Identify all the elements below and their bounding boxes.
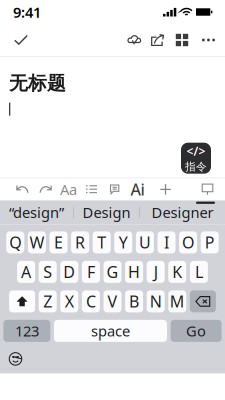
staticText: N xyxy=(150,291,162,312)
staticText: I xyxy=(164,232,169,253)
button[interactable]: J xyxy=(147,261,165,283)
button[interactable]: Design xyxy=(74,200,139,224)
staticText: A xyxy=(21,261,31,282)
button[interactable]: W xyxy=(28,231,46,253)
button[interactable]: Q xyxy=(6,231,24,253)
button[interactable]: Go xyxy=(171,320,222,342)
button[interactable]: E xyxy=(49,231,67,253)
staticText: Q xyxy=(9,232,21,253)
staticText: 9:41 xyxy=(13,2,41,22)
button[interactable]: Emoji xyxy=(2,349,28,368)
button[interactable]: T xyxy=(93,231,111,253)
staticText: Design xyxy=(82,203,130,222)
button[interactable]: M xyxy=(168,290,186,312)
button[interactable]: More xyxy=(195,25,222,55)
button[interactable]: U xyxy=(136,231,154,253)
staticText: space xyxy=(91,321,130,341)
staticText: O xyxy=(182,232,194,253)
staticText: W xyxy=(29,232,44,253)
button[interactable]: 123 xyxy=(3,320,50,342)
staticText: G xyxy=(106,261,118,282)
button[interactable]: A xyxy=(17,261,35,283)
staticText: Z xyxy=(43,291,52,312)
staticText: L xyxy=(195,261,203,282)
staticText: Go xyxy=(186,321,206,341)
button[interactable]: F xyxy=(82,261,100,283)
staticText: U xyxy=(139,232,151,253)
button[interactable]: Share xyxy=(146,25,169,55)
staticText: M xyxy=(170,291,185,312)
staticText: 无标题 xyxy=(9,72,66,95)
button[interactable]: G xyxy=(103,261,121,283)
button[interactable]: L xyxy=(190,261,208,283)
button[interactable]: “design” xyxy=(0,200,73,224)
button[interactable]: I xyxy=(157,231,175,253)
staticText: C xyxy=(86,291,96,312)
staticText: V xyxy=(107,291,117,312)
button[interactable]: S xyxy=(39,261,57,283)
button[interactable]: Designer xyxy=(140,200,225,224)
staticText: 123 xyxy=(15,321,39,341)
button[interactable]: Hide keyboard xyxy=(196,179,219,200)
staticText: Y xyxy=(119,232,128,253)
staticText: D xyxy=(63,261,75,282)
button[interactable]: Comment xyxy=(103,179,126,200)
button[interactable]: Delete xyxy=(190,290,216,312)
button[interactable]: H xyxy=(125,261,143,283)
button[interactable]: B xyxy=(125,290,143,312)
button[interactable]: Insert xyxy=(154,179,177,200)
button[interactable]: Y xyxy=(114,231,132,253)
staticText: B xyxy=(129,291,139,312)
staticText: P xyxy=(205,232,215,253)
button[interactable]: K xyxy=(168,261,186,283)
button[interactable]: X xyxy=(60,290,78,312)
button[interactable]: Z xyxy=(39,290,57,312)
button[interactable]: D xyxy=(60,261,78,283)
button[interactable]: C xyxy=(82,290,100,312)
button[interactable]: AI xyxy=(126,179,149,200)
staticText: T xyxy=(97,232,106,253)
staticText: K xyxy=(172,261,182,282)
button[interactable]: V xyxy=(103,290,121,312)
staticText: </> xyxy=(186,143,205,159)
button[interactable]: O xyxy=(179,231,197,253)
staticText: S xyxy=(43,261,52,282)
button[interactable]: space xyxy=(54,320,167,342)
button[interactable]: Text style xyxy=(57,179,80,200)
staticText: 指令 xyxy=(185,160,207,173)
staticText: H xyxy=(128,261,140,282)
button[interactable]: Undo xyxy=(11,179,34,200)
button[interactable]: Sync xyxy=(123,25,146,55)
button[interactable]: R xyxy=(71,231,89,253)
staticText: Ai xyxy=(130,179,144,200)
button[interactable]: Grid view xyxy=(169,25,195,55)
button[interactable]: Redo xyxy=(34,179,57,200)
button[interactable]: P xyxy=(201,231,219,253)
button[interactable]: List xyxy=(80,179,103,200)
button[interactable]: Shift xyxy=(9,290,35,312)
staticText: Aa xyxy=(60,180,77,199)
staticText: X xyxy=(65,291,74,312)
button[interactable]: </> xyxy=(181,143,211,174)
staticText: Designer xyxy=(151,203,213,222)
staticText: R xyxy=(75,232,85,253)
staticText: “design” xyxy=(9,203,64,222)
staticText: F xyxy=(87,261,95,282)
button[interactable]: Done xyxy=(6,25,36,55)
staticText: J xyxy=(154,261,158,282)
staticText: E xyxy=(54,232,63,253)
button[interactable]: N xyxy=(147,290,165,312)
